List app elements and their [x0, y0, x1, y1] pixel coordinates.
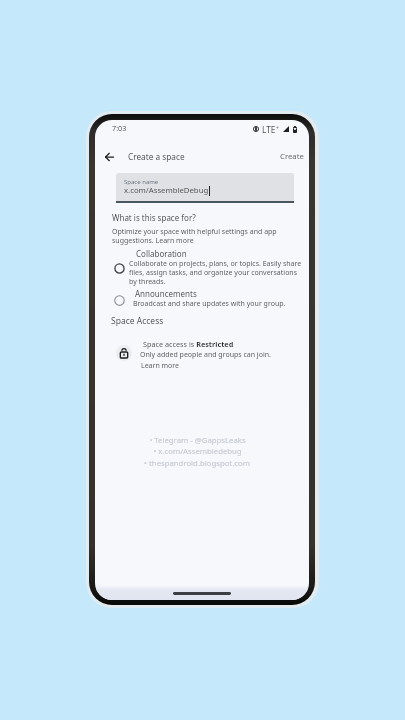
staticText: Space name	[124, 178, 159, 186]
staticText: Space Access	[111, 315, 164, 327]
button[interactable]: Create a space	[124, 147, 188, 166]
staticText: +	[276, 124, 280, 131]
staticText: Optimize your space with helpful setting…	[112, 227, 284, 245]
button[interactable]: Create	[276, 147, 308, 166]
staticText: • Telegram - @GappsLeaks	[149, 435, 246, 446]
staticText: Create a space	[128, 151, 185, 162]
staticText: • x.com/Assembledebug	[153, 446, 242, 457]
staticText: Announcements	[135, 288, 197, 299]
staticText: 7:03	[112, 123, 127, 133]
button[interactable]: Space access is Restricted	[112, 336, 287, 372]
staticText: Collaborate on projects, plans, or topic…	[129, 259, 303, 286]
staticText: Space access is Restricted	[143, 339, 234, 349]
staticText: LTE	[262, 124, 276, 135]
staticText: Create	[280, 151, 304, 162]
staticText: Learn more	[141, 361, 180, 371]
staticText: Broadcast and share updates with your gr…	[133, 299, 309, 309]
button[interactable]: Announcements option	[110, 291, 128, 309]
staticText: Collaboration	[136, 248, 187, 259]
button[interactable]: Collaboration option	[110, 259, 128, 277]
staticText: Only added people and groups can join.	[140, 350, 271, 360]
staticText: x.com/AssembleDebug	[124, 185, 209, 196]
staticText: What is this space for?	[112, 212, 196, 223]
button[interactable]: Back	[99, 146, 120, 167]
button[interactable]: Space name	[116, 173, 294, 203]
staticText: • thespandroid.blogspot.com	[144, 458, 250, 469]
